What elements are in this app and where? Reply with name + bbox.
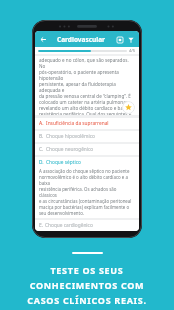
button[interactable]: Back: [38, 34, 49, 45]
button[interactable]: E.: [35, 220, 139, 231]
staticText: resistência periférica. Os achados são c…: [39, 186, 135, 198]
staticText: seu desenvolvimento.: [39, 210, 85, 216]
staticText: adequado e no cólon, que são separados. …: [39, 57, 135, 69]
staticText: Choque neurogênico: [46, 146, 94, 153]
staticText: TESTE OS SEUS: [0, 264, 174, 276]
staticText: Choque cardiogênico: [45, 222, 93, 229]
staticText: CONHECIMENTOS COM: [0, 279, 174, 291]
button[interactable]: A.: [35, 118, 139, 129]
button[interactable]: C.: [35, 144, 139, 155]
staticText: E.: [39, 222, 43, 229]
staticText: maciça por bactérias) explicam facilment…: [39, 204, 130, 210]
staticText: colocado um cateter na artéria pulmonar,: [39, 99, 129, 105]
staticText: pós-operatório, o paciente apresenta hip…: [39, 69, 135, 81]
staticText: persistente, apesar da fluidoterapia ade…: [39, 81, 135, 93]
staticText: A associação do choque sêptico no pacien…: [39, 168, 130, 174]
staticText: revelando um alto débito cardíaco e baix…: [39, 105, 130, 111]
staticText: C.: [39, 146, 44, 153]
staticText: e as circunstâncias (contaminação perito…: [39, 198, 132, 204]
staticText: resistência periférica. Qual dos seguint…: [39, 111, 135, 115]
staticText: Choque hipovolêmico: [46, 133, 95, 140]
button[interactable]: B.: [35, 131, 139, 142]
button[interactable]: Favorite: [122, 101, 135, 114]
staticText: da pressão venosa central de “clamping”.…: [39, 93, 131, 99]
button[interactable]: D.: [35, 157, 139, 218]
staticText: A.: [39, 120, 44, 127]
staticText: 4/5: [129, 48, 136, 53]
staticText: Choque séptico: [46, 159, 81, 166]
staticText: Cardiovascular: [57, 35, 106, 44]
button[interactable]: Filter: [125, 34, 136, 45]
button[interactable]: Notes: [114, 34, 125, 45]
staticText: CASOS CLÍNICOS REAIS.: [0, 294, 174, 306]
staticText: D.: [39, 159, 44, 166]
staticText: normovolêmico é o alto débito cardíaco e…: [39, 174, 135, 186]
staticText: B.: [39, 133, 44, 140]
staticText: Insuficiência da suprarrenal: [46, 120, 109, 127]
